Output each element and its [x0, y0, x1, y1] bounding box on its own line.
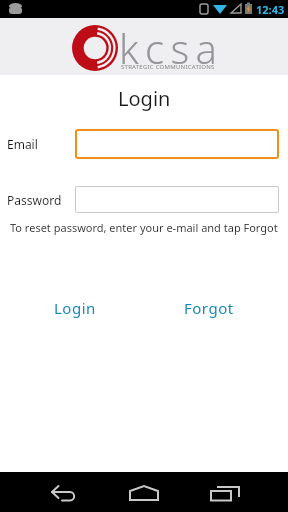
- staticText: Forgot: [184, 298, 234, 318]
- staticText: Login: [54, 298, 96, 318]
- staticText: To reset password, enter your e-mail and…: [10, 220, 278, 235]
- button[interactable]: Forgot: [154, 294, 264, 322]
- button[interactable]: [75, 129, 279, 159]
- staticText: Email: [7, 136, 38, 152]
- button[interactable]: [112, 472, 176, 512]
- staticText: Password: [7, 192, 62, 208]
- button[interactable]: [40, 472, 104, 512]
- staticText: Login: [118, 85, 171, 111]
- staticText: 12:43: [256, 2, 285, 17]
- staticText: kcsa: [119, 21, 224, 75]
- staticText: STRATEGIC COMMUNICATIONS: [121, 63, 215, 71]
- button[interactable]: [184, 472, 248, 512]
- button[interactable]: [75, 186, 279, 213]
- button[interactable]: Login: [20, 294, 130, 322]
